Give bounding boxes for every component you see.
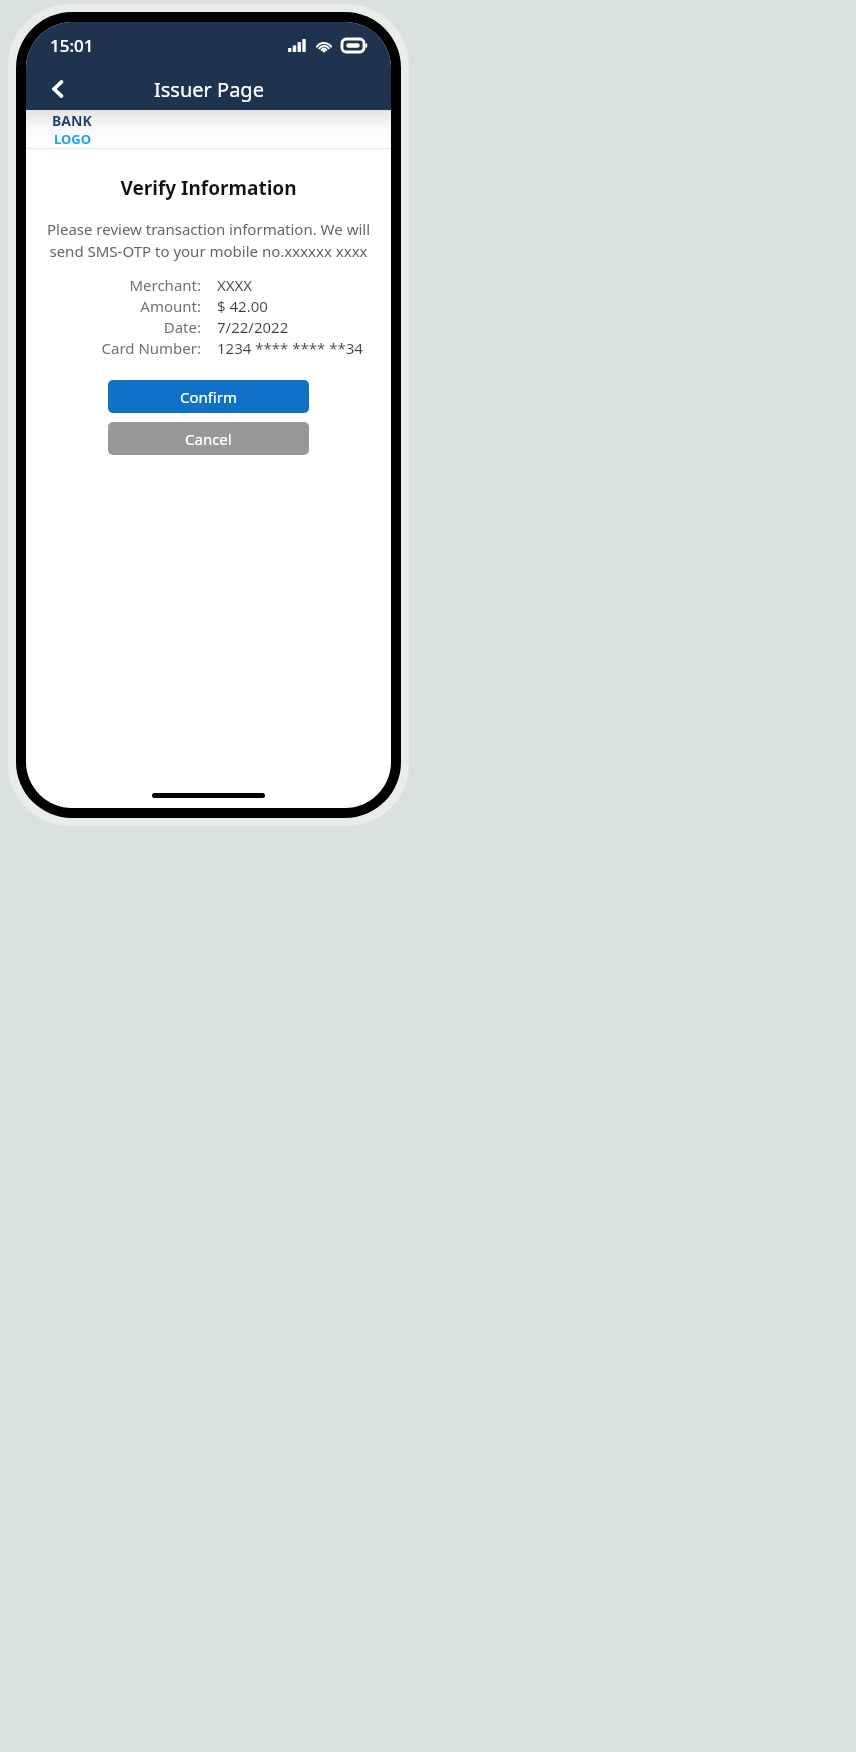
staticText: Issuer Page xyxy=(154,76,264,103)
staticText: Verify Information xyxy=(26,175,391,201)
staticText: 7/22/2022 xyxy=(217,317,289,337)
staticText: BANK xyxy=(52,111,92,130)
button[interactable]: Cancel xyxy=(108,422,309,455)
button[interactable]: Back xyxy=(36,68,80,110)
staticText: Merchant: xyxy=(129,275,201,295)
staticText: 15:01 xyxy=(50,34,94,57)
staticText: Please review transaction information. W… xyxy=(44,219,373,262)
staticText: Confirm xyxy=(180,387,238,407)
staticText: $ 42.00 xyxy=(217,296,268,316)
staticText: Cancel xyxy=(185,429,232,449)
staticText: LOGO xyxy=(54,130,91,148)
staticText: XXXX xyxy=(217,275,253,295)
staticText: Card Number: xyxy=(101,338,201,358)
button[interactable]: Confirm xyxy=(108,380,309,413)
staticText: Date: xyxy=(163,317,201,337)
staticText: Amount: xyxy=(140,296,201,316)
staticText: 1234 **** **** **34 xyxy=(217,338,363,358)
